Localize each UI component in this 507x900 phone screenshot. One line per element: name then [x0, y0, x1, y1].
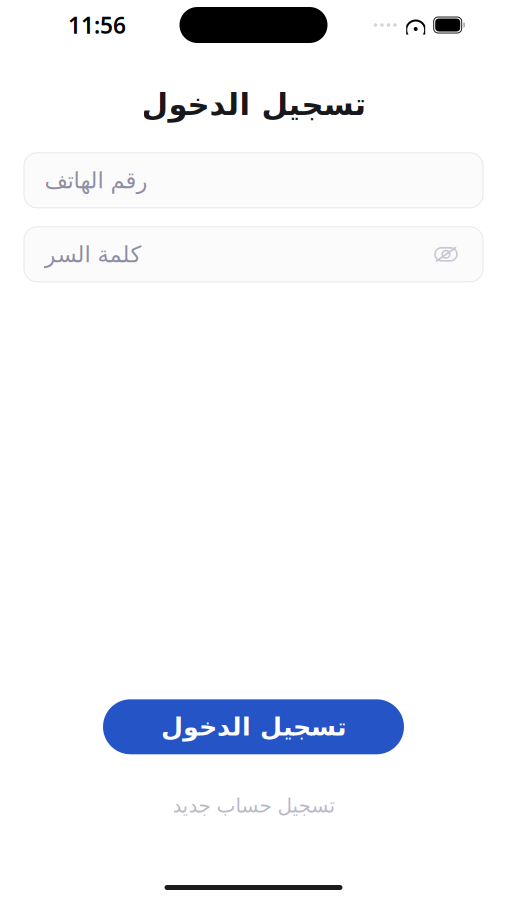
staticText: كلمة السر: [44, 241, 141, 267]
staticText: رقم الهاتف: [44, 167, 147, 193]
staticText: تسجيل الدخول: [141, 87, 366, 122]
staticText: تسجيل الدخول: [160, 712, 346, 741]
staticText: تسجيل حساب جديد: [172, 794, 335, 817]
button[interactable]: إظهار كلمة السر: [429, 237, 463, 271]
button[interactable]: تسجيل الدخول: [103, 699, 404, 754]
button[interactable]: تسجيل حساب جديد: [148, 784, 359, 827]
staticText: 11:56: [68, 10, 126, 40]
